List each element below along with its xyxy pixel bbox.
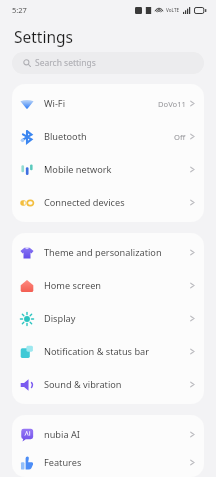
staticText: Settings	[14, 26, 73, 47]
staticText: Sound & vibration	[44, 378, 122, 391]
staticText: Home screen	[44, 279, 101, 292]
button[interactable]: Sound & vibration	[12, 368, 204, 401]
button[interactable]: Display	[12, 302, 204, 335]
staticText: Theme and personalization	[44, 246, 162, 259]
staticText: Wi-Fi	[44, 97, 66, 110]
button[interactable]: Features	[12, 451, 204, 474]
staticText: Features	[44, 456, 82, 469]
button[interactable]: Theme and personalization	[12, 236, 204, 269]
button[interactable]: Wi-Fi	[12, 87, 204, 120]
button[interactable]: Connected devices	[12, 186, 204, 219]
button[interactable]: Notification & status bar	[12, 335, 204, 368]
staticText: Notification & status bar	[44, 345, 150, 358]
button[interactable]: Search	[12, 52, 204, 74]
staticText: Search settings	[35, 57, 96, 69]
staticText: Display	[44, 312, 76, 325]
staticText: Off	[174, 132, 186, 142]
button[interactable]: Mobile network	[12, 153, 204, 186]
staticText: 5:27	[12, 5, 27, 15]
staticText: nubia AI	[44, 428, 80, 441]
staticText: Bluetooth	[44, 130, 87, 143]
staticText: VoLTE	[166, 7, 180, 13]
staticText: DoVo11	[158, 99, 186, 109]
button[interactable]: Home screen	[12, 269, 204, 302]
button[interactable]: Bluetooth	[12, 120, 204, 153]
staticText: Mobile network	[44, 163, 112, 176]
button[interactable]: nubia AI	[12, 418, 204, 451]
other: Search	[23, 59, 31, 67]
staticText: Connected devices	[44, 196, 125, 209]
